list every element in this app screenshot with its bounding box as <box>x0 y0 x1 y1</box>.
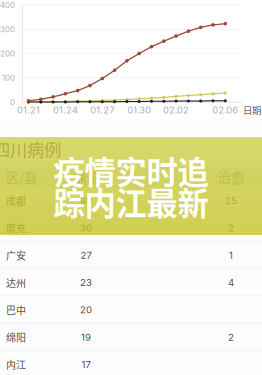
staticText: 400 <box>0 0 15 10</box>
staticText: 300 <box>0 24 15 34</box>
staticText: 20 <box>80 304 92 316</box>
staticText: 治愈 <box>218 167 244 187</box>
staticText: 踪内江最新 <box>53 179 208 224</box>
staticText: 01.24 <box>53 104 78 116</box>
staticText: 达州 <box>6 275 26 290</box>
staticText: 25 <box>225 195 237 206</box>
staticText: 区/县 <box>6 167 37 187</box>
staticText: 巴中 <box>6 303 26 317</box>
staticText: 1 <box>229 249 233 261</box>
staticText: 南充 <box>6 221 26 235</box>
staticText: 成都 <box>6 193 26 208</box>
staticText: 02.02 <box>163 104 189 116</box>
staticText: 98 <box>80 195 92 206</box>
staticText: 2 <box>228 331 234 343</box>
staticText: 2 <box>228 222 234 234</box>
staticText: 疫情实时追 <box>53 148 208 193</box>
staticText: 4 <box>228 277 234 288</box>
staticText: 绵阳 <box>6 330 26 344</box>
staticText: 广安 <box>6 248 26 262</box>
staticText: 100 <box>2 73 15 83</box>
staticText: 内江 <box>6 357 26 372</box>
staticText: 02.06 <box>212 104 238 116</box>
staticText: 01.27 <box>90 104 114 116</box>
staticText: 19 <box>81 331 91 343</box>
staticText: 23 <box>80 277 92 288</box>
staticText: 30 <box>80 222 92 234</box>
staticText: 0 <box>10 97 15 107</box>
staticText: 确诊 <box>73 167 99 187</box>
staticText: 日期 <box>243 103 261 117</box>
staticText: 01.21 <box>17 104 40 116</box>
staticText: 17 <box>81 359 90 370</box>
staticText: 01.30 <box>127 104 151 116</box>
staticText: 200 <box>0 49 15 58</box>
staticText: 四川病例 <box>0 136 61 162</box>
staticText: 27 <box>80 249 91 261</box>
